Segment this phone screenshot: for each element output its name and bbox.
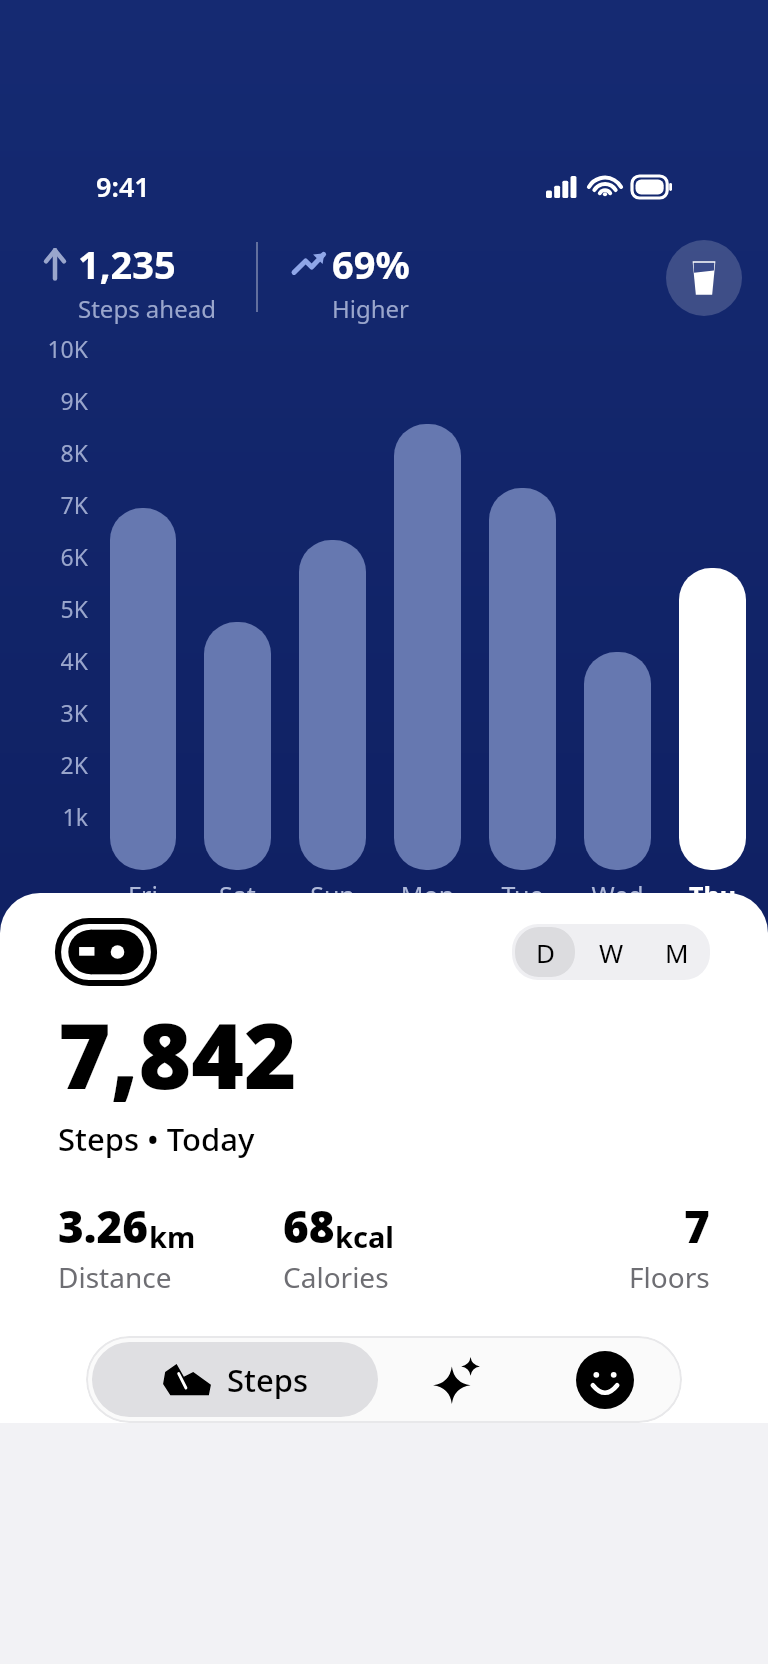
button[interactable]: W [581, 927, 641, 977]
staticText: Steps ahead [78, 292, 216, 325]
button[interactable] [679, 568, 746, 870]
staticText: Steps [227, 1359, 309, 1401]
staticText: Distance [58, 1258, 172, 1296]
staticText: 1k [34, 801, 88, 832]
staticText: W [599, 935, 624, 970]
staticText: 9:41 [96, 168, 150, 205]
staticText: 2K [34, 749, 88, 780]
staticText: Tue [475, 878, 570, 912]
button[interactable] [394, 424, 461, 870]
staticText: 10K [34, 333, 88, 364]
button[interactable]: M [647, 927, 707, 977]
staticText: Calories [283, 1258, 389, 1296]
button[interactable] [299, 540, 366, 870]
staticText: 9K [34, 385, 88, 416]
staticText: 5K [34, 593, 88, 624]
staticText: kcal [335, 1217, 394, 1256]
staticText: Floors [629, 1258, 710, 1296]
button[interactable] [110, 508, 176, 870]
staticText: Wed [570, 878, 665, 912]
staticText: 69% [332, 238, 410, 290]
button[interactable] [489, 488, 556, 870]
staticText: 68 [283, 1196, 335, 1256]
staticText: 3K [34, 697, 88, 728]
staticText: Sun [285, 878, 380, 912]
button[interactable]: Water intake [666, 240, 742, 316]
staticText: 7,842 [58, 993, 297, 1116]
staticText: km [149, 1217, 196, 1256]
button[interactable]: Insights [384, 1336, 527, 1423]
staticText: 7K [34, 489, 88, 520]
staticText: Higher [332, 292, 410, 325]
staticText: Sat [190, 878, 285, 912]
staticText: Fri [96, 878, 190, 912]
button[interactable] [204, 622, 271, 870]
button[interactable]: Mood [527, 1336, 682, 1423]
staticText: M [665, 935, 689, 970]
staticText: 4K [34, 645, 88, 676]
staticText: Steps • Today [58, 1118, 255, 1160]
button[interactable]: GO logo [58, 921, 154, 983]
button[interactable]: Steps [92, 1342, 378, 1417]
staticText: Thu [665, 878, 760, 912]
staticText: 6K [34, 541, 88, 572]
staticText: 7 [684, 1196, 710, 1256]
staticText: Mon [380, 878, 475, 912]
staticText: 8K [34, 437, 88, 468]
staticText: 3.26 [58, 1196, 149, 1256]
button[interactable]: D [515, 927, 575, 977]
button[interactable] [584, 652, 651, 870]
staticText: D [536, 935, 555, 970]
staticText: 1,235 [78, 238, 176, 290]
